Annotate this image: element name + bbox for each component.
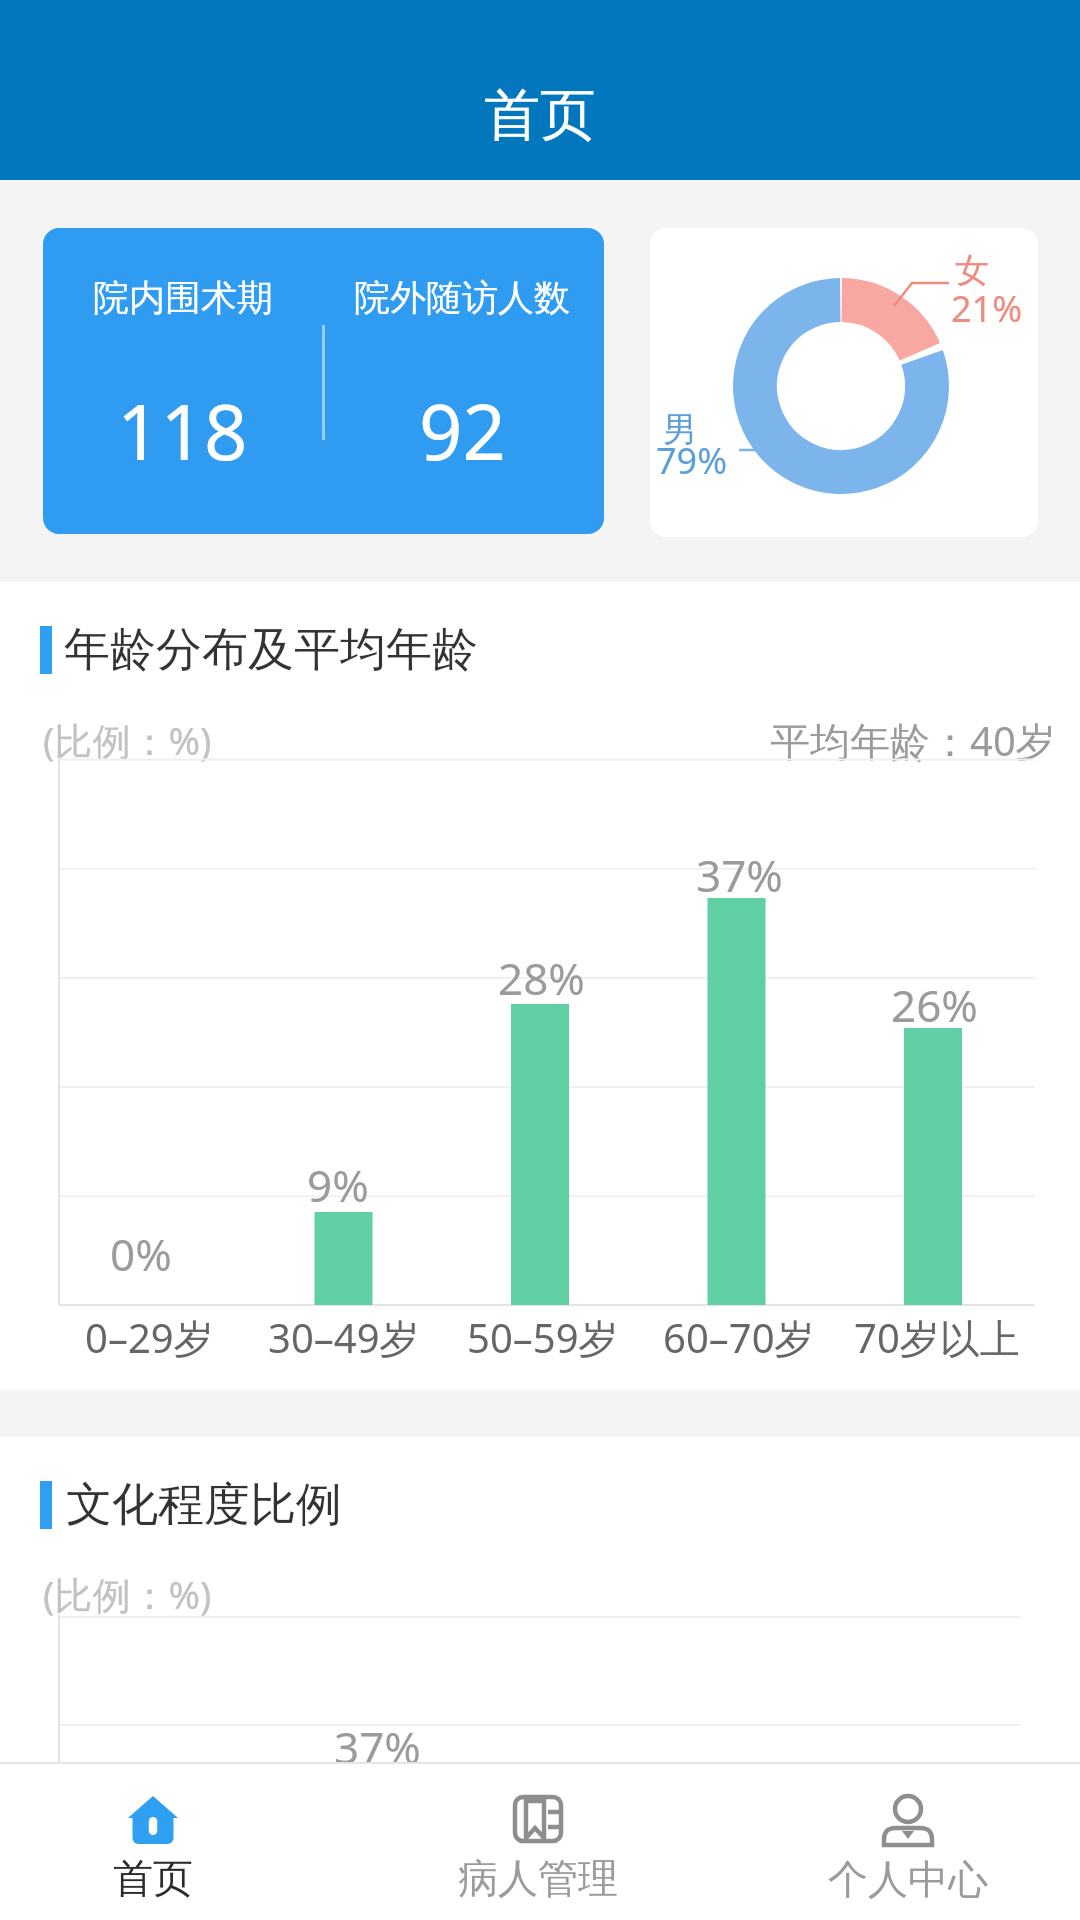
staticText: 男 <box>663 408 697 451</box>
staticText: 平均年龄：40岁 <box>770 713 1056 768</box>
staticText: 37% <box>334 1717 421 1777</box>
staticText: 个人中心 <box>828 1854 988 1904</box>
staticText: 60–70岁 <box>663 1310 815 1365</box>
staticText: 年龄分布及平均年龄 <box>64 621 478 679</box>
staticText: 9% <box>307 1155 369 1215</box>
button[interactable]: 女 <box>650 228 1038 537</box>
staticText: 文化程度比例 <box>66 1476 342 1534</box>
staticText: 50–59岁 <box>467 1310 619 1365</box>
button[interactable]: 个人中心 <box>758 1762 1058 1920</box>
staticText: 92 <box>419 379 506 483</box>
staticText: 病人管理 <box>458 1853 618 1903</box>
staticText: 70岁以上 <box>854 1310 1020 1365</box>
staticText: 首页 <box>113 1853 193 1903</box>
staticText: 79% <box>656 436 728 485</box>
staticText: 21% <box>951 284 1023 333</box>
staticText: 28% <box>498 948 585 1008</box>
staticText: 院外随访人数 <box>354 275 570 320</box>
staticText: 118 <box>117 379 248 483</box>
button[interactable]: 病人管理 <box>388 1762 688 1920</box>
staticText: 37% <box>696 845 783 905</box>
button[interactable]: 首页 <box>3 1762 303 1920</box>
staticText: 院内围术期 <box>93 275 273 320</box>
staticText: (比例：%) <box>43 1568 212 1620</box>
staticText: 26% <box>891 975 978 1035</box>
staticText: 0% <box>110 1224 172 1284</box>
staticText: 0–29岁 <box>85 1310 214 1365</box>
staticText: 女 <box>955 249 989 292</box>
staticText: 30–49岁 <box>268 1310 420 1365</box>
button[interactable]: 院内围术期 <box>43 228 604 534</box>
staticText: (比例：%) <box>43 714 212 766</box>
staticText: 首页 <box>484 80 596 151</box>
